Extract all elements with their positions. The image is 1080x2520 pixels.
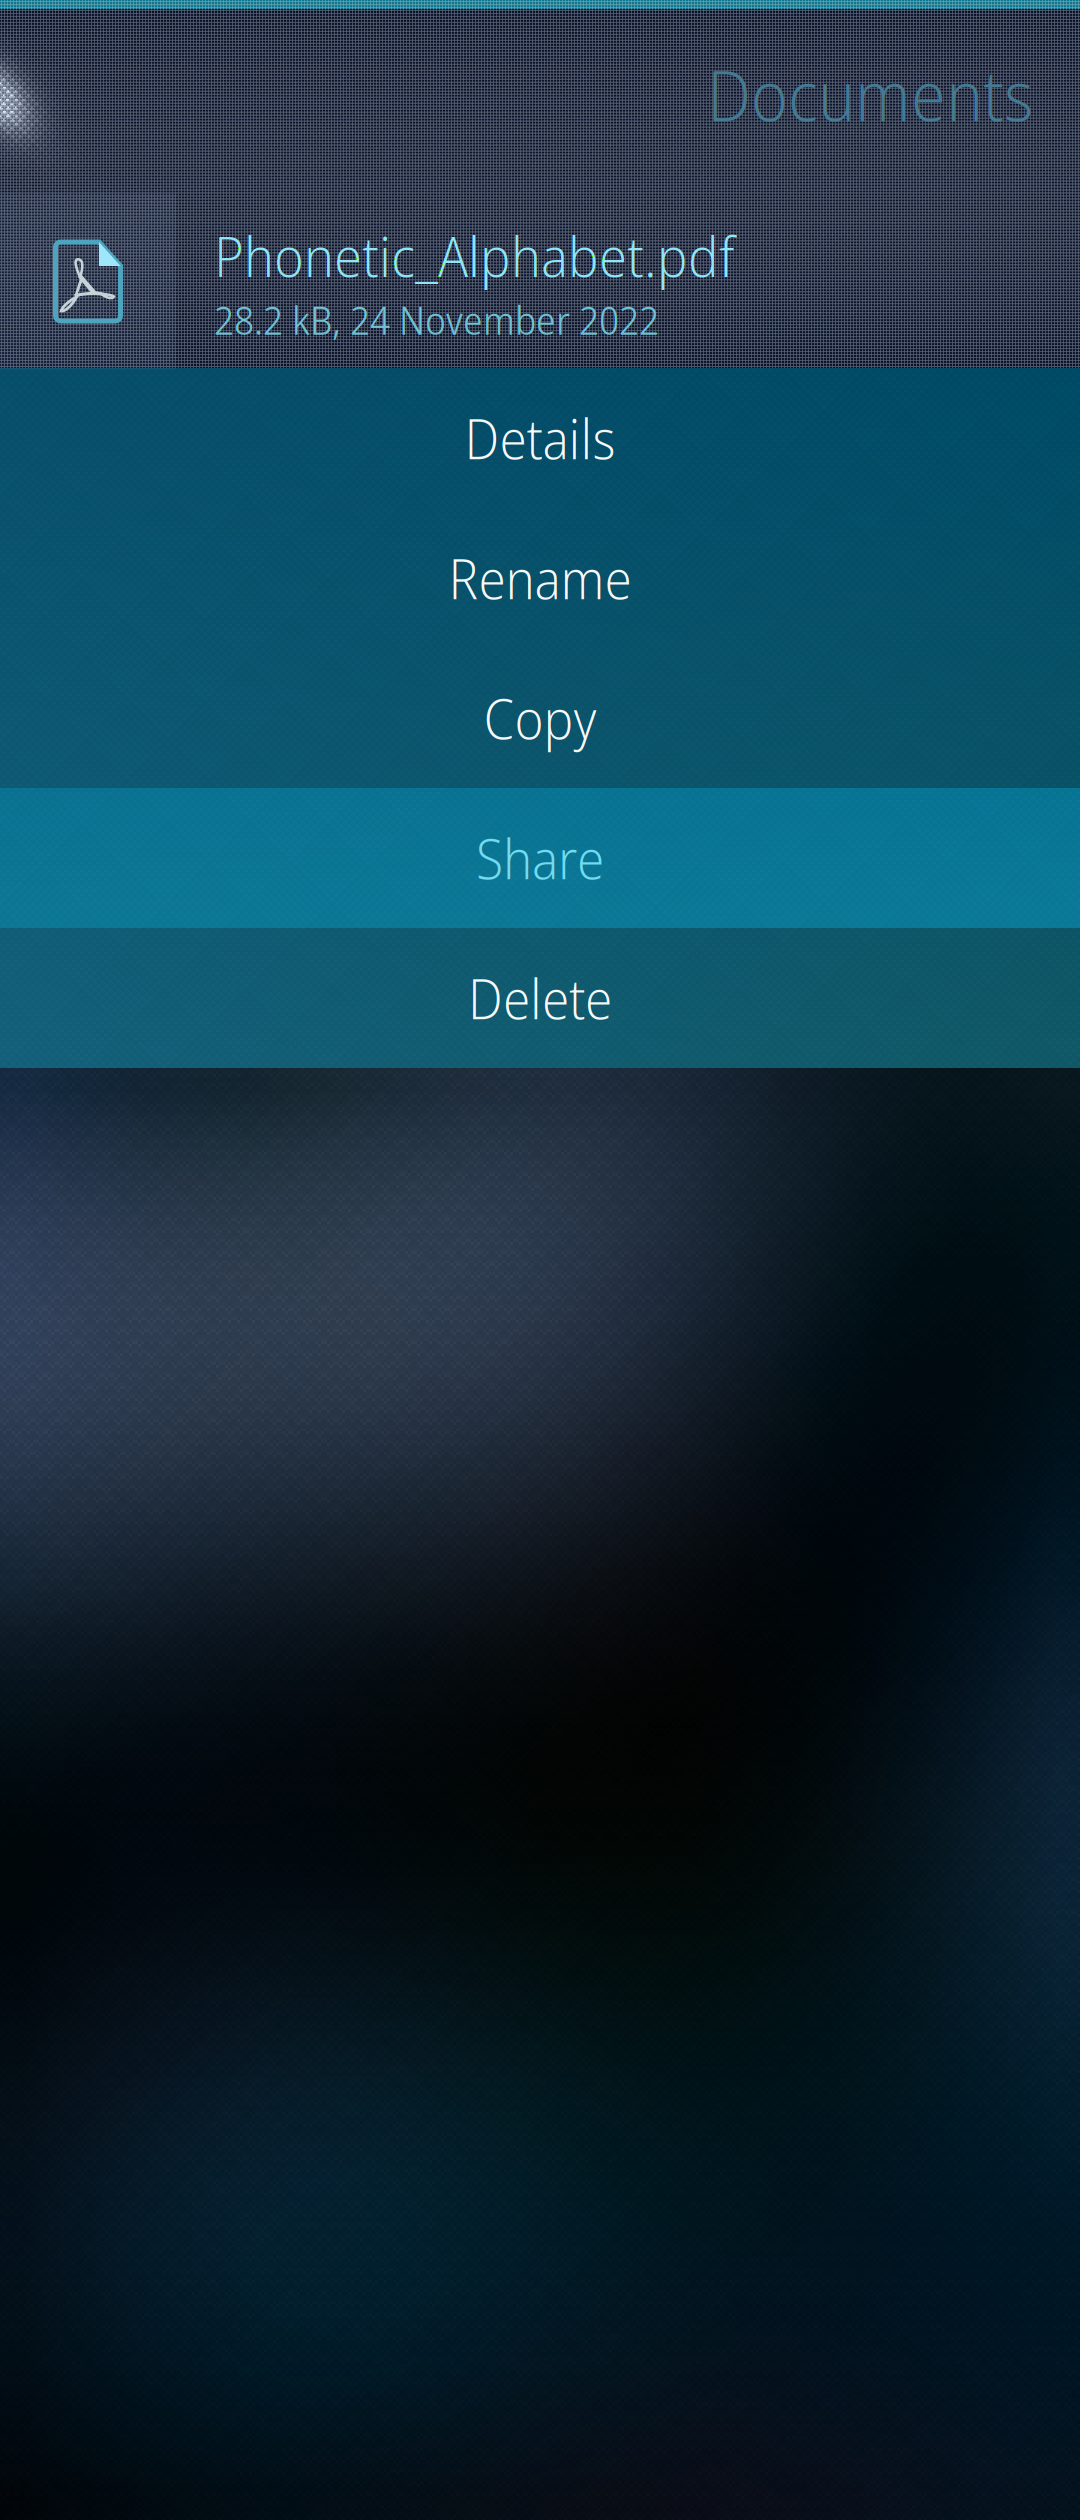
staticText: Rename xyxy=(448,541,631,615)
button[interactable]: Share xyxy=(0,788,1080,928)
staticText: 28.2 kB, 24 November 2022 xyxy=(214,293,659,346)
staticText: Copy xyxy=(483,681,596,755)
staticText: Details xyxy=(464,401,615,475)
staticText: Delete xyxy=(468,961,612,1035)
staticText: Share xyxy=(476,821,604,895)
staticText: Phonetic_Alphabet.pdf xyxy=(214,217,735,293)
button[interactable]: Details xyxy=(0,368,1080,508)
button[interactable]: Rename xyxy=(0,508,1080,648)
button[interactable]: Delete xyxy=(0,928,1080,1068)
button[interactable]: Copy xyxy=(0,648,1080,788)
staticText: Documents xyxy=(707,47,1033,141)
